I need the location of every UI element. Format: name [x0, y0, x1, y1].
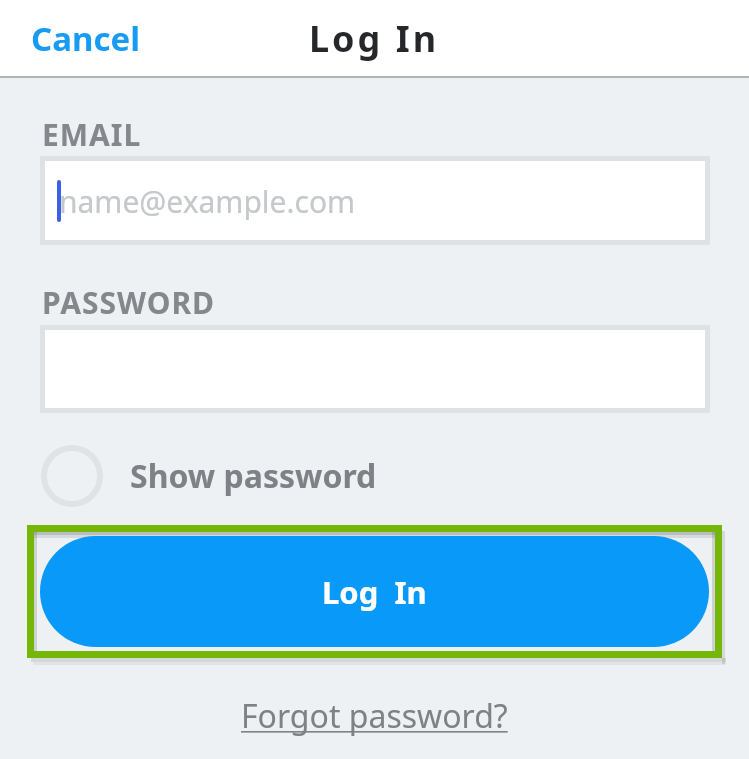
button[interactable]: Log In [40, 536, 709, 647]
button[interactable]: Cancel [0, 10, 150, 67]
button[interactable]: Forgot password? [237, 690, 512, 742]
staticText: PASSWORD [42, 282, 216, 323]
staticText: EMAIL [42, 114, 142, 155]
staticText: Log In [322, 571, 427, 613]
staticText: Cancel [31, 16, 140, 61]
staticText: Log In [309, 14, 440, 63]
button[interactable]: Show password [41, 445, 377, 507]
staticText: Show password [130, 454, 377, 498]
staticText: name@example.com [59, 181, 356, 222]
staticText: Forgot password? [241, 694, 508, 738]
button[interactable] [40, 325, 710, 413]
button[interactable]: name@example.com [40, 156, 710, 245]
